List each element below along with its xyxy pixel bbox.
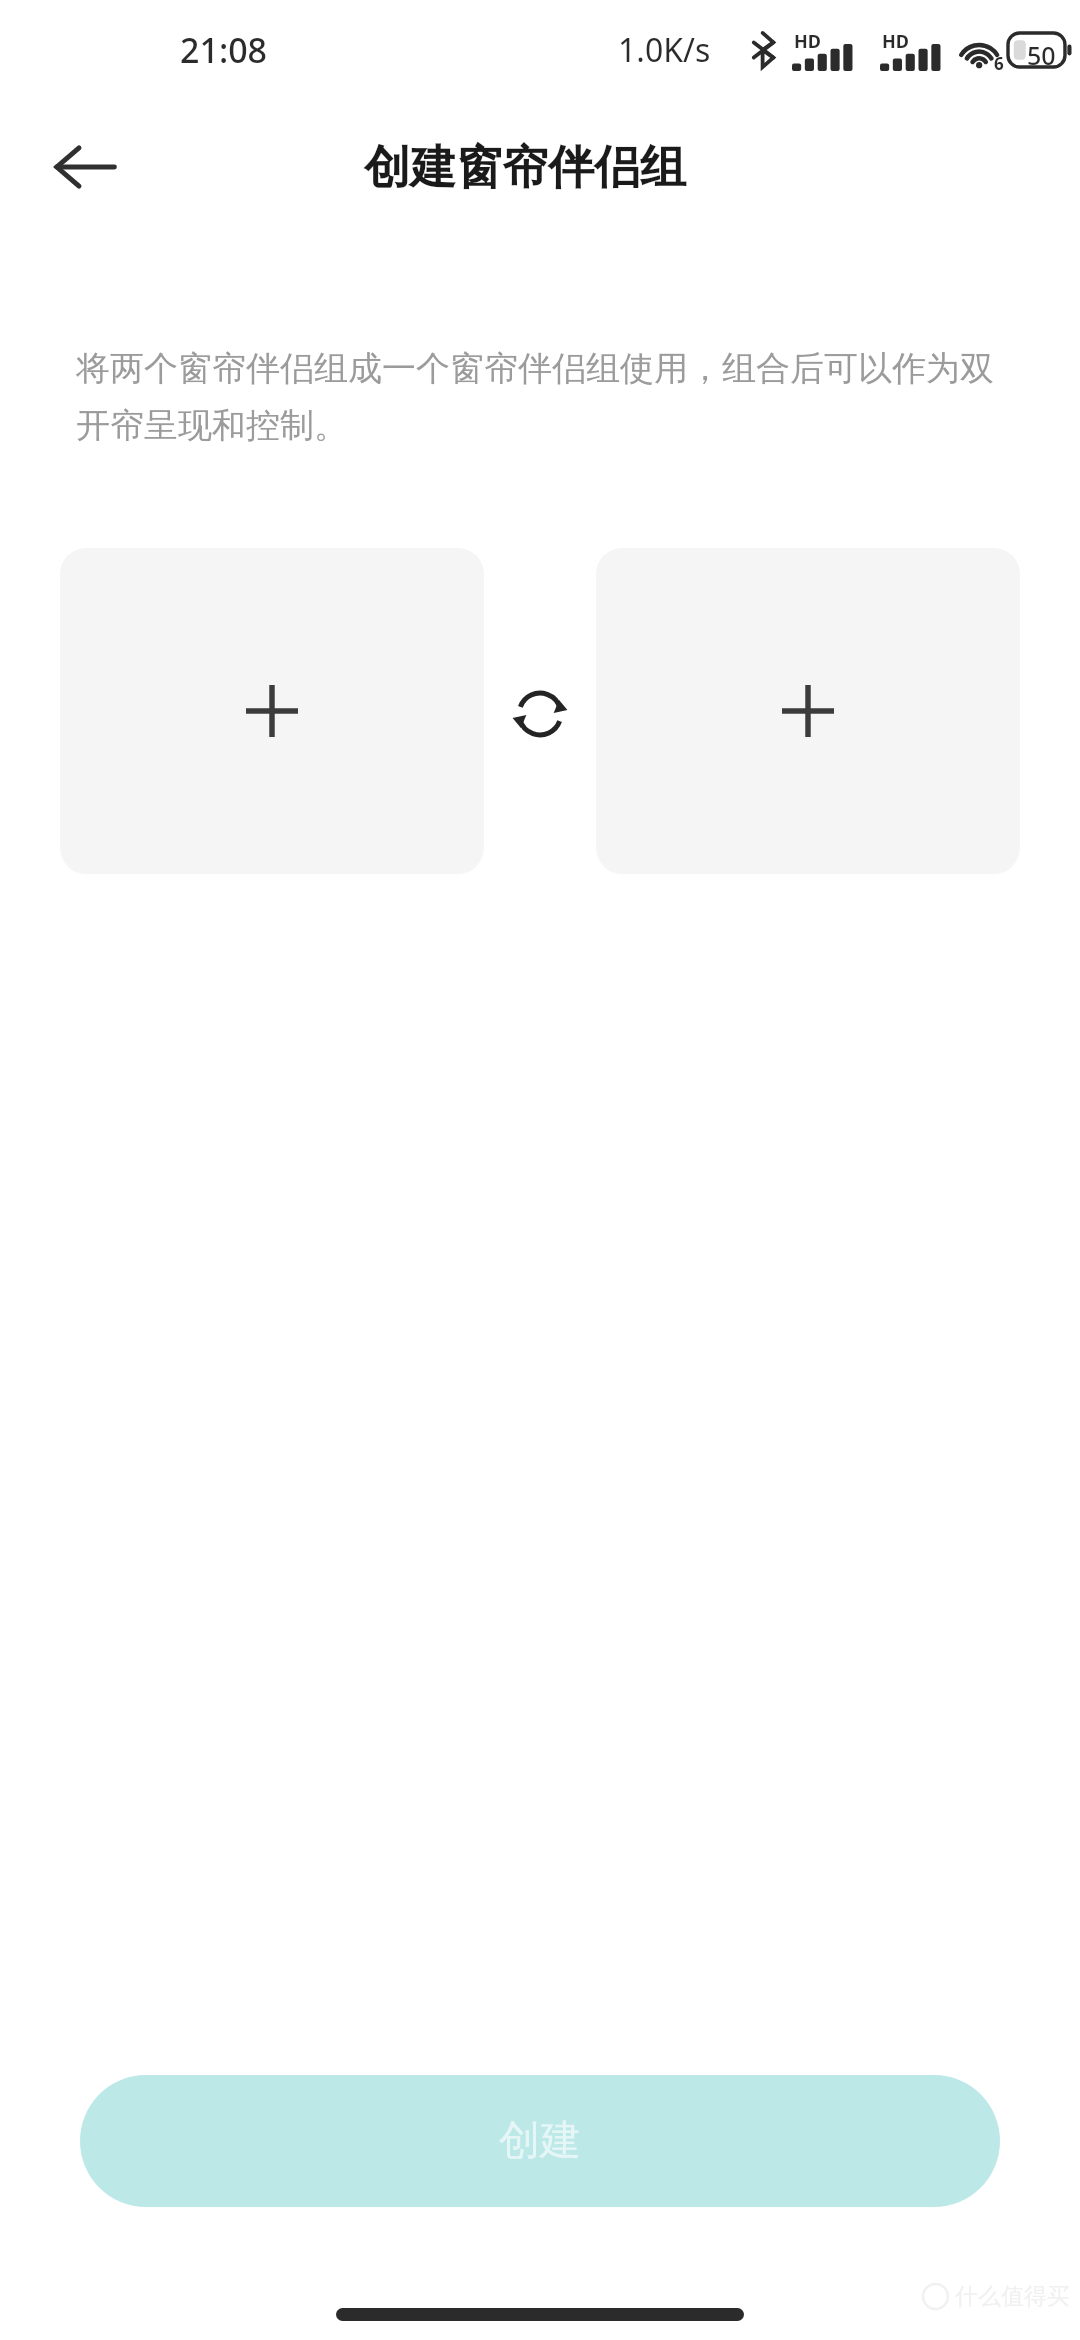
staticText: HD xyxy=(882,29,909,54)
staticText: 1.0K/s xyxy=(618,28,711,72)
staticText: HD xyxy=(794,29,821,54)
staticText: 什么值得买 xyxy=(955,2282,1070,2311)
staticText: 50 xyxy=(1027,38,1056,72)
staticText: 21:08 xyxy=(180,27,268,73)
staticText: 创建窗帘伴侣组 xyxy=(364,139,686,197)
staticText: 创建 xyxy=(499,2115,581,2167)
button[interactable]: Swap xyxy=(503,677,577,751)
button[interactable]: Back xyxy=(42,124,128,210)
button[interactable]: Add curtain companion xyxy=(60,548,484,874)
button[interactable]: Add curtain companion xyxy=(596,548,1020,874)
staticText: 6 xyxy=(994,52,1004,75)
staticText: 将两个窗帘伴侣组成一个窗帘伴侣组使用，组合后可以作为双开帘呈现和控制。 xyxy=(76,347,1004,447)
button[interactable]: 创建 xyxy=(80,2075,1000,2207)
